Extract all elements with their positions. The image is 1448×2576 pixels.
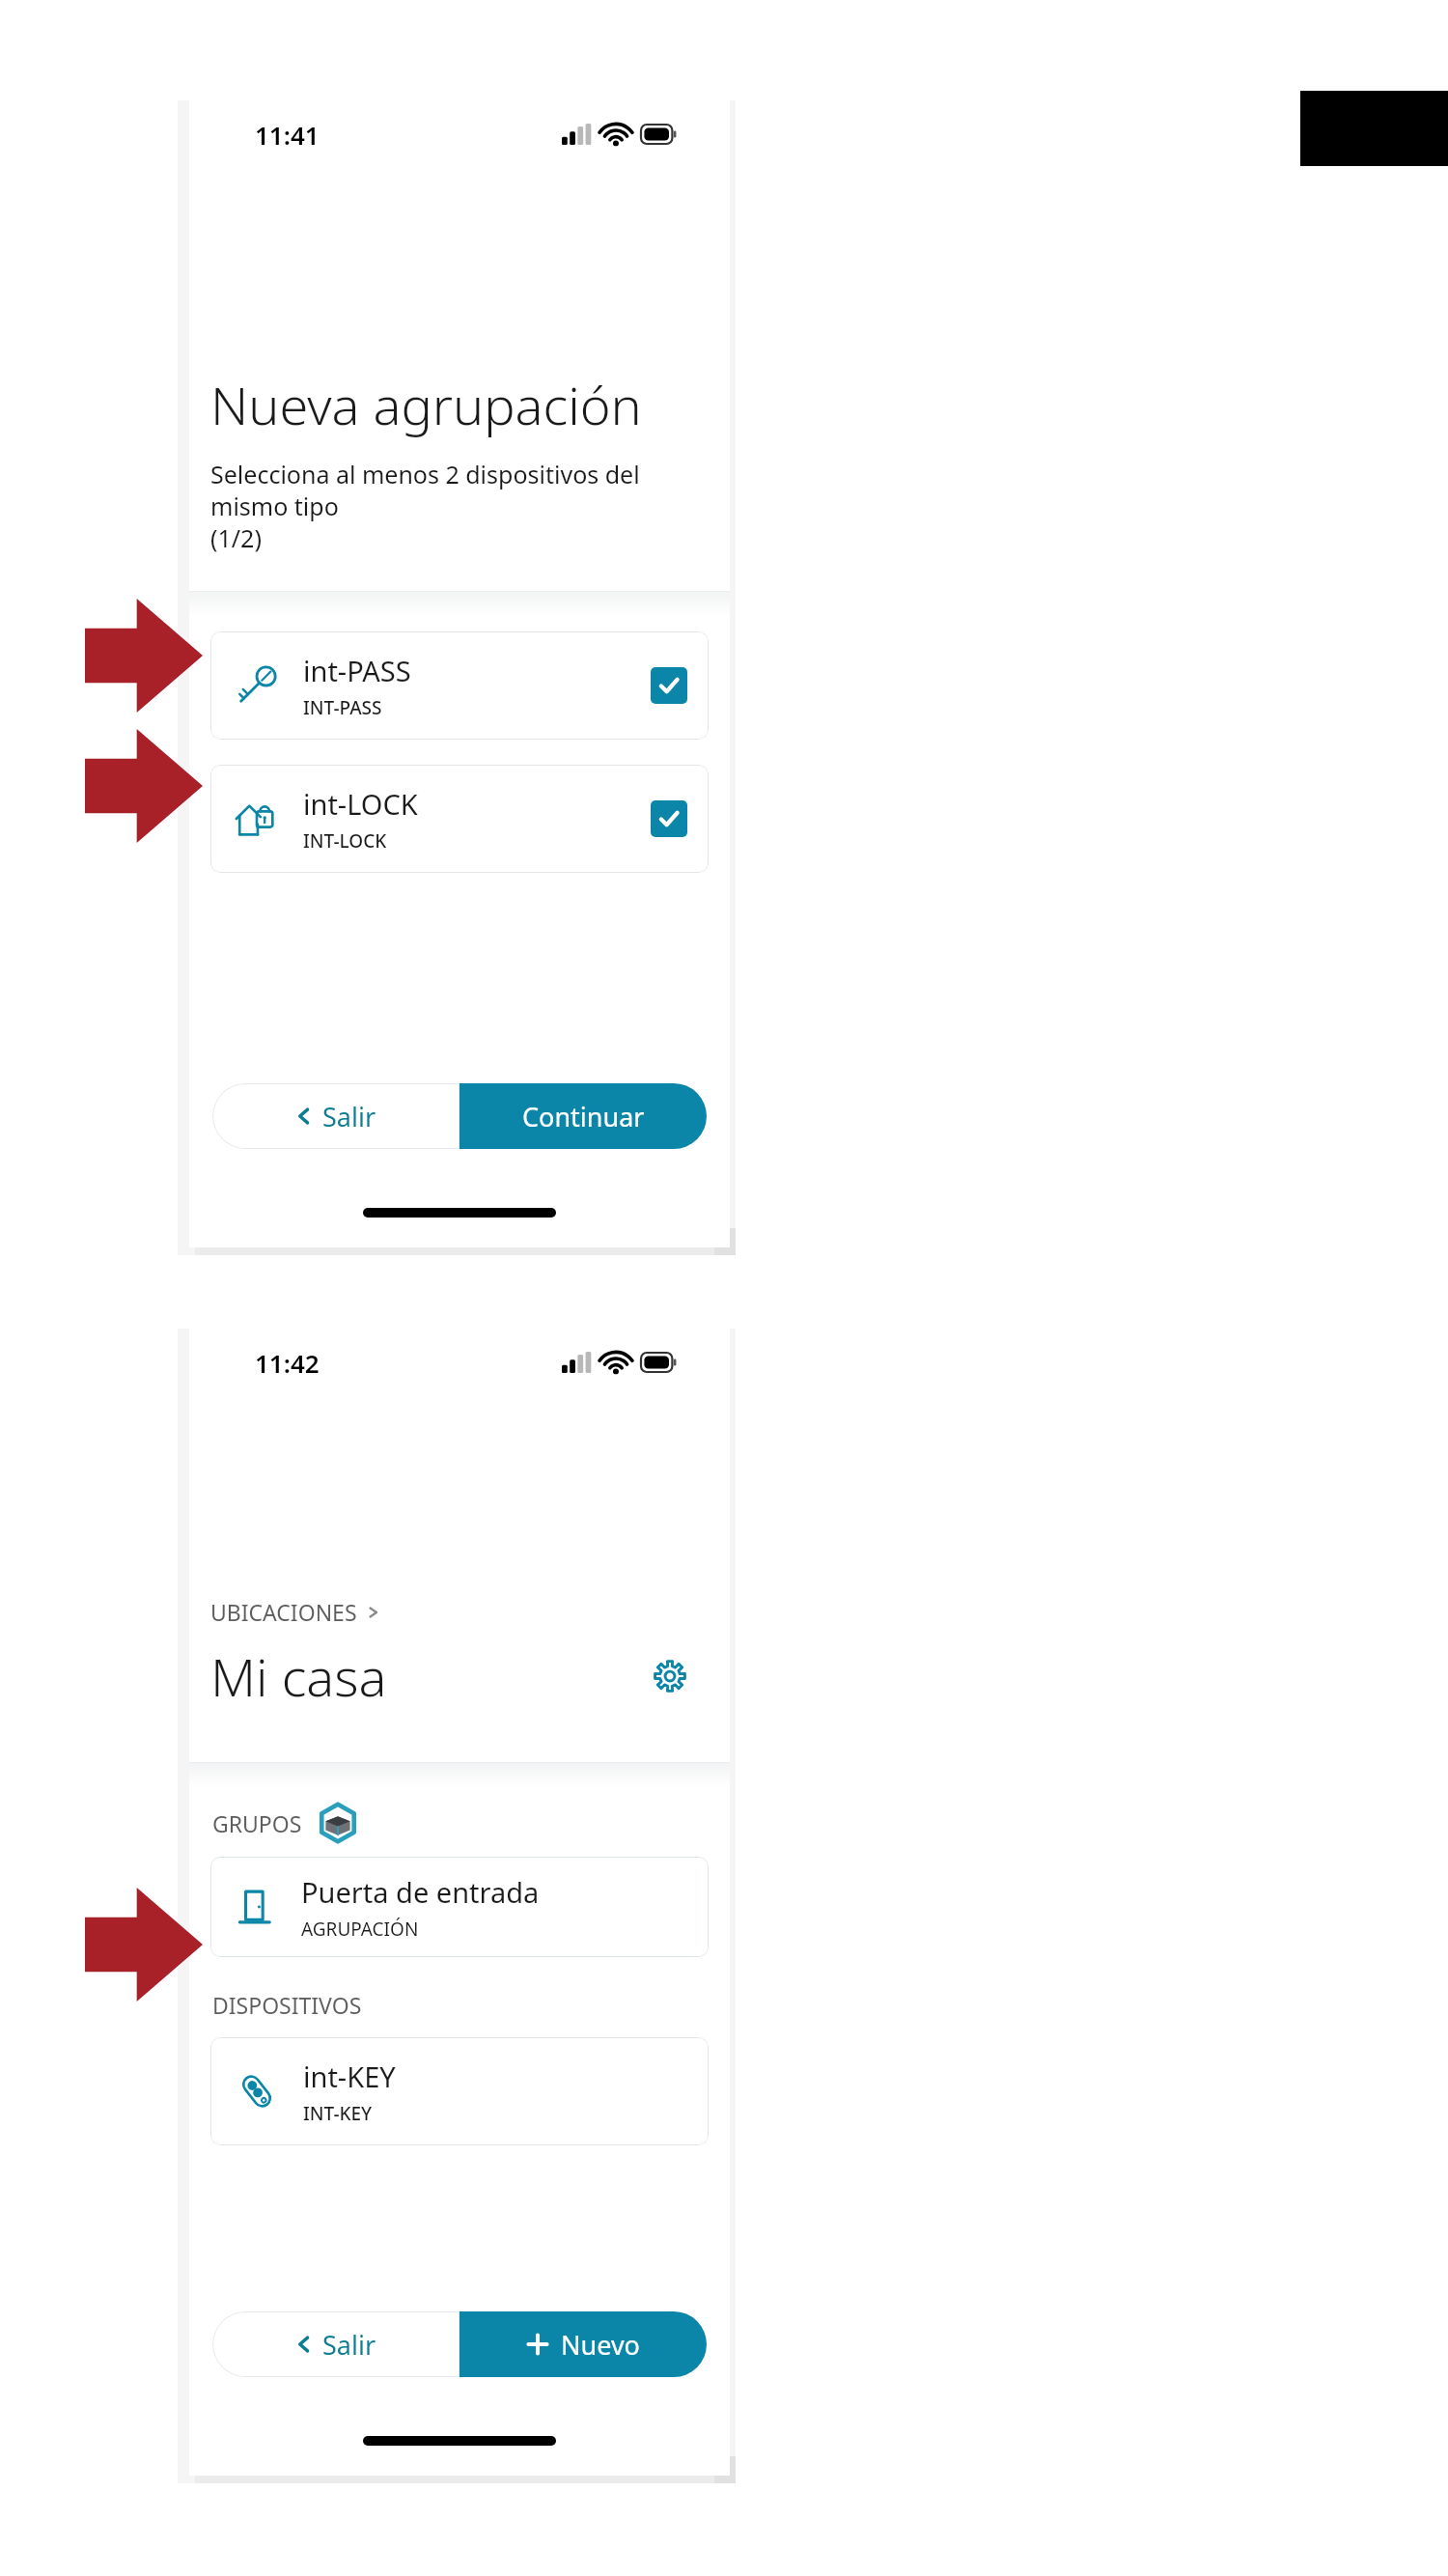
button[interactable]: Ajustes xyxy=(645,1651,695,1701)
staticText: INT-PASS xyxy=(303,695,382,720)
staticText: UBICACIONES xyxy=(210,1597,357,1627)
button[interactable]: Seleccionado xyxy=(651,800,687,837)
button[interactable]: Seleccionado xyxy=(651,667,687,704)
button[interactable]: Continuar xyxy=(459,1083,707,1149)
staticText: Selecciona al menos 2 dispositivos del m… xyxy=(210,458,716,554)
staticText: Mi casa xyxy=(210,1640,387,1712)
staticText: int-PASS xyxy=(303,652,411,689)
staticText: Puerta de entrada xyxy=(301,1873,540,1911)
button[interactable]: UBICACIONES xyxy=(210,1597,380,1627)
staticText: AGRUPACIÓN xyxy=(301,1917,419,1942)
staticText: Salir xyxy=(322,2327,376,2363)
staticText: 11:41 xyxy=(255,118,320,152)
button[interactable]: int-KEY xyxy=(210,2037,709,2145)
staticText: DISPOSITIVOS xyxy=(212,1990,362,2020)
button[interactable]: Salir xyxy=(212,1083,459,1149)
staticText: int-LOCK xyxy=(303,785,418,823)
staticText: Nuevo xyxy=(561,2327,640,2363)
staticText: INT-KEY xyxy=(303,2101,373,2126)
staticText: 11:42 xyxy=(255,1346,320,1380)
button[interactable]: Salir xyxy=(212,2311,459,2377)
staticText: Continuar xyxy=(522,1099,645,1134)
button[interactable]: int-PASS xyxy=(210,631,709,740)
staticText: GRUPOS xyxy=(212,1808,302,1838)
button[interactable]: Nuevo xyxy=(459,2311,707,2377)
staticText: INT-LOCK xyxy=(303,828,387,854)
staticText: Salir xyxy=(322,1099,376,1134)
staticText: Nueva agrupación xyxy=(210,369,642,440)
button[interactable]: int-LOCK xyxy=(210,765,709,873)
staticText: int-KEY xyxy=(303,2058,396,2095)
button[interactable]: Puerta de entrada xyxy=(210,1857,709,1957)
